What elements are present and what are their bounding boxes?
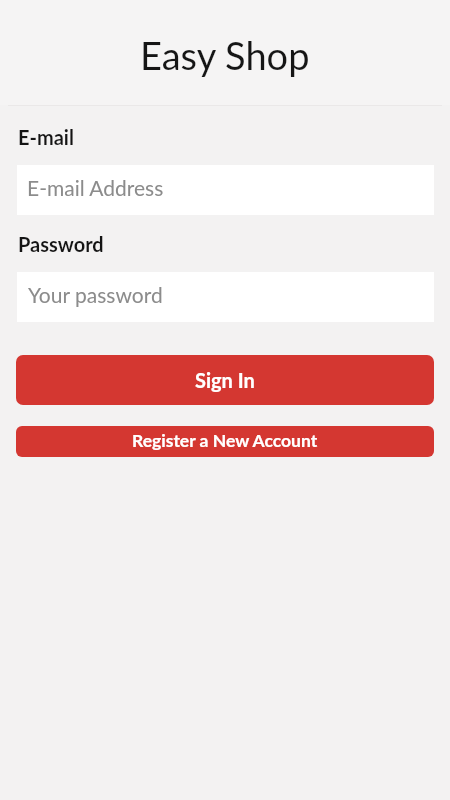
staticText: Easy Shop bbox=[140, 32, 310, 78]
staticText: Register a New Account bbox=[132, 430, 318, 451]
button[interactable]: Register a New Account bbox=[16, 426, 434, 457]
button[interactable]: Sign In bbox=[16, 355, 434, 405]
button[interactable]: Your password bbox=[17, 272, 434, 322]
staticText: Sign In bbox=[195, 368, 255, 392]
staticText: Password bbox=[18, 232, 104, 256]
button[interactable]: E-mail Address bbox=[17, 165, 434, 215]
staticText: Your password bbox=[28, 282, 163, 307]
staticText: E-mail Address bbox=[27, 175, 164, 200]
staticText: E-mail bbox=[18, 125, 74, 149]
